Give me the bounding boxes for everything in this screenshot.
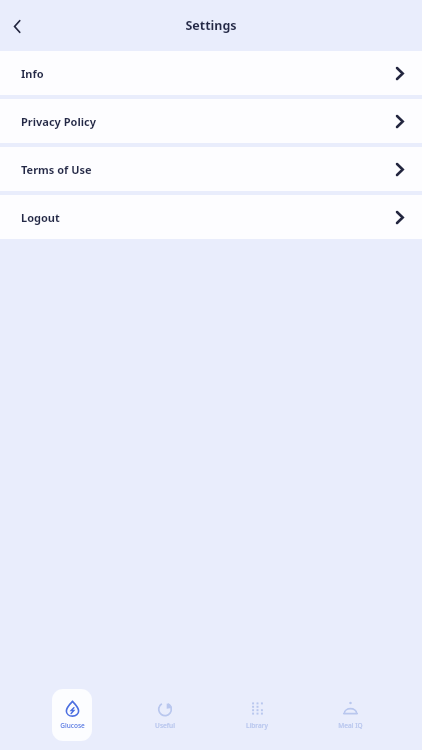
staticText: Library — [246, 721, 268, 730]
button[interactable]: Info — [0, 51, 422, 95]
staticText: Privacy Policy — [21, 114, 96, 129]
button[interactable]: Back — [1, 10, 33, 42]
button[interactable]: Terms of Use — [0, 147, 422, 191]
staticText: Logout — [21, 210, 60, 225]
button[interactable]: Library — [237, 689, 277, 741]
button[interactable]: Useful — [145, 689, 185, 741]
staticText: Terms of Use — [21, 162, 92, 177]
staticText: Meal IQ — [338, 721, 363, 730]
button[interactable]: Meal IQ — [330, 689, 370, 741]
staticText: Settings — [185, 17, 237, 34]
button[interactable]: Logout — [0, 195, 422, 239]
button[interactable]: Glucose — [52, 689, 92, 741]
staticText: Useful — [155, 721, 175, 730]
staticText: Glucose — [60, 721, 85, 730]
button[interactable]: Privacy Policy — [0, 99, 422, 143]
staticText: Info — [21, 66, 44, 81]
